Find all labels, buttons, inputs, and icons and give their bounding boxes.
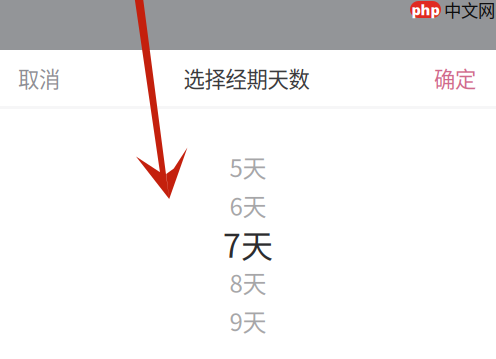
staticText: 7天 (223, 221, 273, 267)
staticText: 选择经期天数 (183, 63, 309, 93)
staticText: 8天 (229, 265, 266, 300)
button[interactable]: 5天 (0, 147, 496, 186)
staticText: 6天 (229, 188, 266, 223)
button[interactable]: 确定 (412, 50, 496, 106)
button[interactable]: 8天 (0, 263, 496, 301)
staticText: php (411, 0, 439, 19)
staticText: 5天 (229, 149, 266, 184)
staticText: 确定 (434, 63, 476, 93)
staticText: 取消 (18, 63, 60, 93)
button[interactable]: 7天 (0, 224, 496, 263)
staticText: 9天 (229, 303, 266, 338)
button[interactable]: 9天 (0, 301, 496, 340)
button[interactable]: 6天 (0, 186, 496, 224)
staticText: 中文网 (444, 0, 495, 22)
button[interactable]: 取消 (0, 50, 82, 106)
